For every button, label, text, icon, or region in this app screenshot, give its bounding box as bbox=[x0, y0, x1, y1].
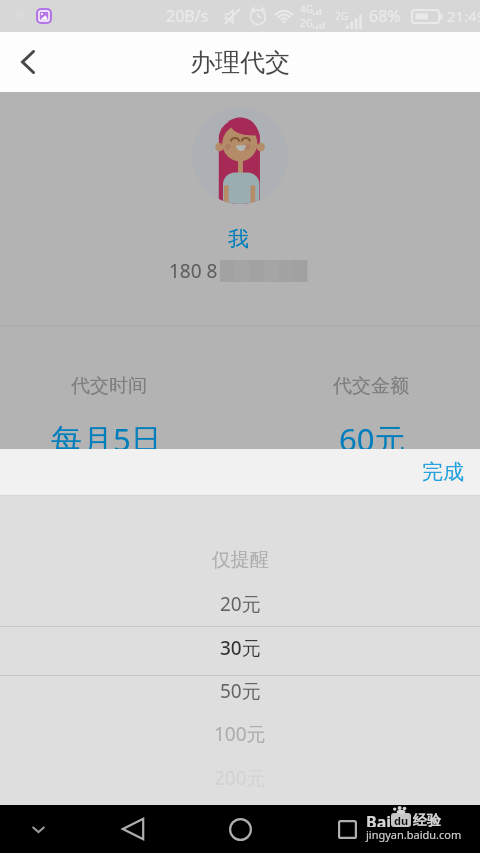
button[interactable]: 20元 bbox=[0, 582, 480, 626]
staticText: 200元 bbox=[214, 765, 266, 791]
staticText: 2G bbox=[335, 9, 348, 23]
staticText: 代交金额 bbox=[333, 374, 409, 398]
staticText: 180 8 bbox=[169, 258, 218, 284]
staticText: 完成 bbox=[422, 459, 464, 485]
staticText: jingyan.baidu.com bbox=[366, 827, 462, 842]
button[interactable]: Home bbox=[216, 805, 264, 853]
staticText: 仅提醒 bbox=[212, 548, 269, 572]
staticText: Bai bbox=[366, 811, 392, 827]
button[interactable]: Hide keyboard bbox=[14, 805, 62, 853]
button[interactable]: 仅提醒 bbox=[0, 538, 480, 582]
staticText: du bbox=[394, 813, 409, 827]
button[interactable]: Back bbox=[0, 32, 56, 92]
staticText: 办理代交 bbox=[190, 47, 290, 78]
staticText: 100元 bbox=[214, 721, 266, 747]
button[interactable]: 50元 bbox=[0, 669, 480, 713]
staticText: 我 bbox=[228, 226, 249, 252]
staticText: 68% bbox=[369, 5, 401, 27]
staticText: 20B/s bbox=[166, 5, 209, 27]
staticText: 60元 bbox=[339, 418, 406, 460]
button[interactable]: 100元 bbox=[0, 712, 480, 756]
button[interactable]: Recent apps bbox=[323, 805, 371, 853]
staticText: 20元 bbox=[220, 591, 261, 617]
staticText: 4G bbox=[300, 2, 313, 16]
staticText: 代交时间 bbox=[71, 374, 147, 398]
button[interactable]: Back bbox=[109, 805, 157, 853]
button[interactable]: 完成 bbox=[406, 449, 480, 495]
staticText: 50元 bbox=[220, 678, 261, 704]
staticText: 21:49 bbox=[447, 6, 480, 26]
staticText: 30元 bbox=[220, 635, 261, 661]
staticText: 每月5日 bbox=[51, 418, 162, 460]
staticText: 2G bbox=[300, 16, 313, 30]
staticText: 经验 bbox=[413, 812, 441, 828]
button[interactable]: 30元 bbox=[0, 626, 480, 670]
